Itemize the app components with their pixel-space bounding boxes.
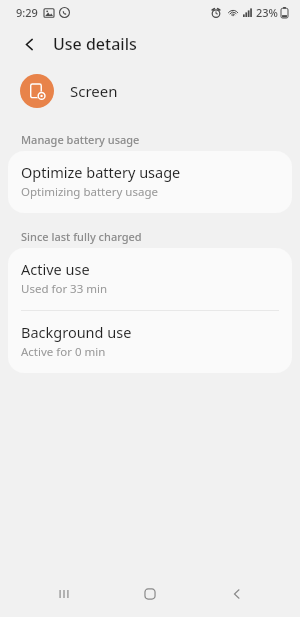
staticText: Active for 0 min bbox=[21, 344, 106, 360]
button[interactable]: Back bbox=[214, 571, 260, 617]
button[interactable]: Back bbox=[14, 29, 44, 59]
staticText: Background use bbox=[21, 322, 132, 342]
staticText: Screen bbox=[70, 81, 118, 101]
button[interactable]: Optimize battery usage bbox=[8, 151, 292, 213]
staticText: 23% bbox=[256, 5, 278, 20]
button[interactable]: Active use bbox=[8, 248, 292, 310]
button[interactable]: Recent apps bbox=[41, 571, 87, 617]
staticText: Active use bbox=[21, 259, 90, 279]
staticText: Use details bbox=[53, 33, 137, 55]
staticText: Manage battery usage bbox=[21, 132, 140, 147]
staticText: Optimize battery usage bbox=[21, 162, 181, 182]
staticText: Used for 33 min bbox=[21, 281, 108, 297]
button[interactable]: Background use bbox=[8, 311, 292, 373]
button[interactable]: Home bbox=[127, 571, 173, 617]
staticText: Optimizing battery usage bbox=[21, 184, 158, 200]
staticText: 9:29 bbox=[16, 5, 38, 20]
staticText: Since last fully charged bbox=[21, 229, 142, 244]
